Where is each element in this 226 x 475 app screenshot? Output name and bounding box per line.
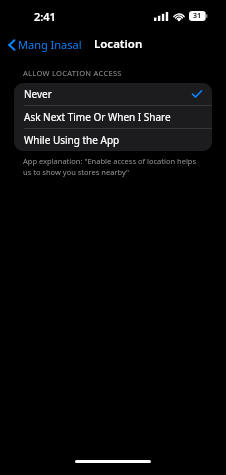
button[interactable]: While Using the App (14, 129, 212, 151)
staticText: 31 (193, 11, 202, 21)
staticText: 2:41 (34, 9, 56, 24)
staticText: ALLOW LOCATION ACCESS (23, 68, 226, 78)
staticText: While Using the App (24, 133, 120, 147)
staticText: Never (24, 87, 52, 101)
staticText: Ask Next Time Or When I Share (24, 110, 171, 124)
staticText: App explanation: "Enable access of locat… (23, 156, 204, 177)
button[interactable]: Never (14, 83, 212, 105)
button[interactable]: Ask Next Time Or When I Share (14, 106, 212, 128)
staticText: Location (94, 36, 143, 52)
button[interactable]: Mang Inasal (0, 34, 88, 55)
staticText: Mang Inasal (18, 37, 82, 52)
